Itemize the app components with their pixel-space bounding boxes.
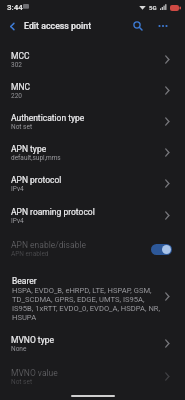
staticText: HSPA, EVDO_B, eHRPD, LTE, HSPAP, GSM, TD… [12, 286, 165, 322]
button[interactable]: APN enable/disable [0, 232, 185, 266]
button[interactable]: Authentication type [0, 106, 185, 137]
button[interactable]: MNC [0, 75, 185, 106]
staticText: APN protocol [11, 175, 62, 185]
staticText: MVNO type [11, 335, 54, 345]
staticText: APN type [11, 144, 47, 154]
staticText: MNC [11, 82, 31, 92]
staticText: Not set [11, 123, 33, 131]
staticText: Edit access point [24, 21, 92, 31]
staticText: IPv4 [11, 185, 24, 193]
staticText: Authentication type [11, 113, 85, 123]
staticText: IPv4 [11, 217, 24, 225]
button[interactable]: MVNO value [0, 360, 185, 393]
button[interactable]: More options [150, 14, 175, 38]
button[interactable]: APN protocol [0, 168, 185, 199]
staticText: APN enable/disable [11, 240, 86, 250]
button[interactable]: MVNO type [0, 327, 185, 360]
staticText: Not set [11, 378, 33, 386]
staticText: 3:44 [7, 3, 23, 12]
staticText: 220 [11, 92, 22, 100]
staticText: 302 [11, 61, 22, 69]
staticText: Bearer [12, 276, 37, 286]
button[interactable]: Back [0, 14, 24, 38]
button[interactable]: APN roaming protocol [0, 199, 185, 232]
staticText: 5G [149, 4, 157, 11]
button[interactable]: MCC [0, 44, 185, 75]
staticText: None [11, 345, 27, 353]
staticText: MVNO value [11, 368, 58, 378]
button[interactable]: Search [126, 14, 150, 38]
button[interactable]: Bearer [0, 266, 185, 327]
button[interactable]: APN type [0, 137, 185, 168]
staticText: APN roaming protocol [11, 207, 95, 217]
staticText: MCC [11, 51, 30, 61]
staticText: default,supl,mms [11, 154, 61, 162]
staticText: APN enabled [11, 250, 49, 258]
